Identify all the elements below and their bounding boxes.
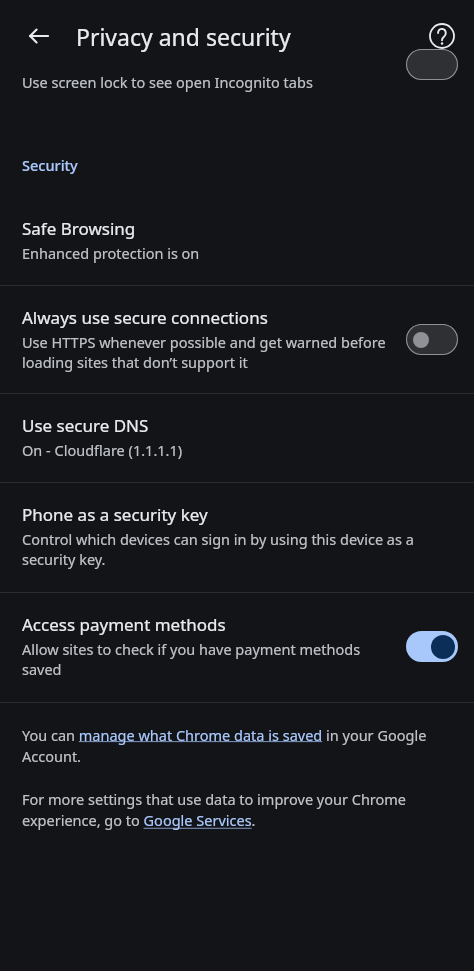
staticText: Control which devices can sign in by usi… xyxy=(22,529,446,570)
staticText: Use secure DNS xyxy=(22,414,149,437)
button[interactable] xyxy=(406,631,458,662)
button[interactable]: Use screen lock to see open Incognito ta… xyxy=(0,72,474,103)
button[interactable] xyxy=(406,324,458,355)
button[interactable]: Phone as a security key xyxy=(0,483,474,592)
button[interactable]: Use secure DNS xyxy=(0,394,474,482)
staticText: Allow sites to check if you have payment… xyxy=(22,639,394,680)
staticText: You can manage what Chrome data is saved… xyxy=(22,725,458,767)
staticText: Phone as a security key xyxy=(22,503,208,526)
staticText: For more settings that use data to impro… xyxy=(22,789,458,831)
button[interactable]: Access payment methods xyxy=(0,593,474,702)
button[interactable]: Always use secure connections xyxy=(0,286,474,393)
staticText: Use screen lock to see open Incognito ta… xyxy=(22,72,394,92)
staticText: Access payment methods xyxy=(22,613,226,636)
button[interactable]: Help xyxy=(420,14,464,58)
staticText: Always use secure connections xyxy=(22,306,268,329)
staticText: On - Cloudflare (1.1.1.1) xyxy=(22,440,183,460)
staticText: Privacy and security xyxy=(76,21,291,52)
staticText: Enhanced protection is on xyxy=(22,243,200,263)
button[interactable]: Safe Browsing xyxy=(0,217,474,285)
staticText: Safe Browsing xyxy=(22,217,136,240)
staticText: Security xyxy=(22,155,78,175)
staticText: Use HTTPS whenever possible and get warn… xyxy=(22,332,394,373)
button[interactable]: Back xyxy=(15,12,63,60)
